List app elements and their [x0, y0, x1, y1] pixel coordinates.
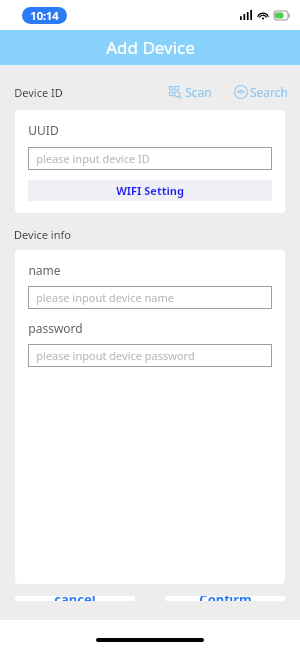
button[interactable]: WIFI Setting: [28, 180, 272, 201]
staticText: Search: [250, 84, 288, 100]
staticText: please inpout device password: [36, 348, 195, 363]
button[interactable]: please input device ID: [28, 147, 272, 170]
staticText: password: [28, 320, 83, 336]
button[interactable]: Scan: [167, 82, 214, 102]
button[interactable]: Search: [232, 82, 290, 102]
staticText: name: [28, 262, 61, 278]
staticText: 10:14: [30, 8, 59, 23]
staticText: Add Device: [106, 36, 195, 59]
staticText: Device ID: [14, 85, 63, 100]
staticText: UUID: [28, 122, 59, 138]
button[interactable]: Confirm: [165, 596, 285, 601]
staticText: Confirm: [199, 596, 252, 601]
other: Search: [234, 85, 248, 99]
staticText: WIFI Setting: [116, 183, 184, 198]
staticText: Device info: [14, 227, 71, 242]
staticText: cancel: [54, 596, 96, 601]
other: Scan: [169, 86, 182, 99]
staticText: please input device ID: [36, 151, 150, 166]
button[interactable]: please inpout device name: [28, 286, 272, 309]
staticText: please inpout device name: [36, 290, 174, 305]
button[interactable]: cancel: [15, 596, 135, 601]
staticText: Scan: [185, 84, 212, 100]
button[interactable]: please inpout device password: [28, 344, 272, 367]
